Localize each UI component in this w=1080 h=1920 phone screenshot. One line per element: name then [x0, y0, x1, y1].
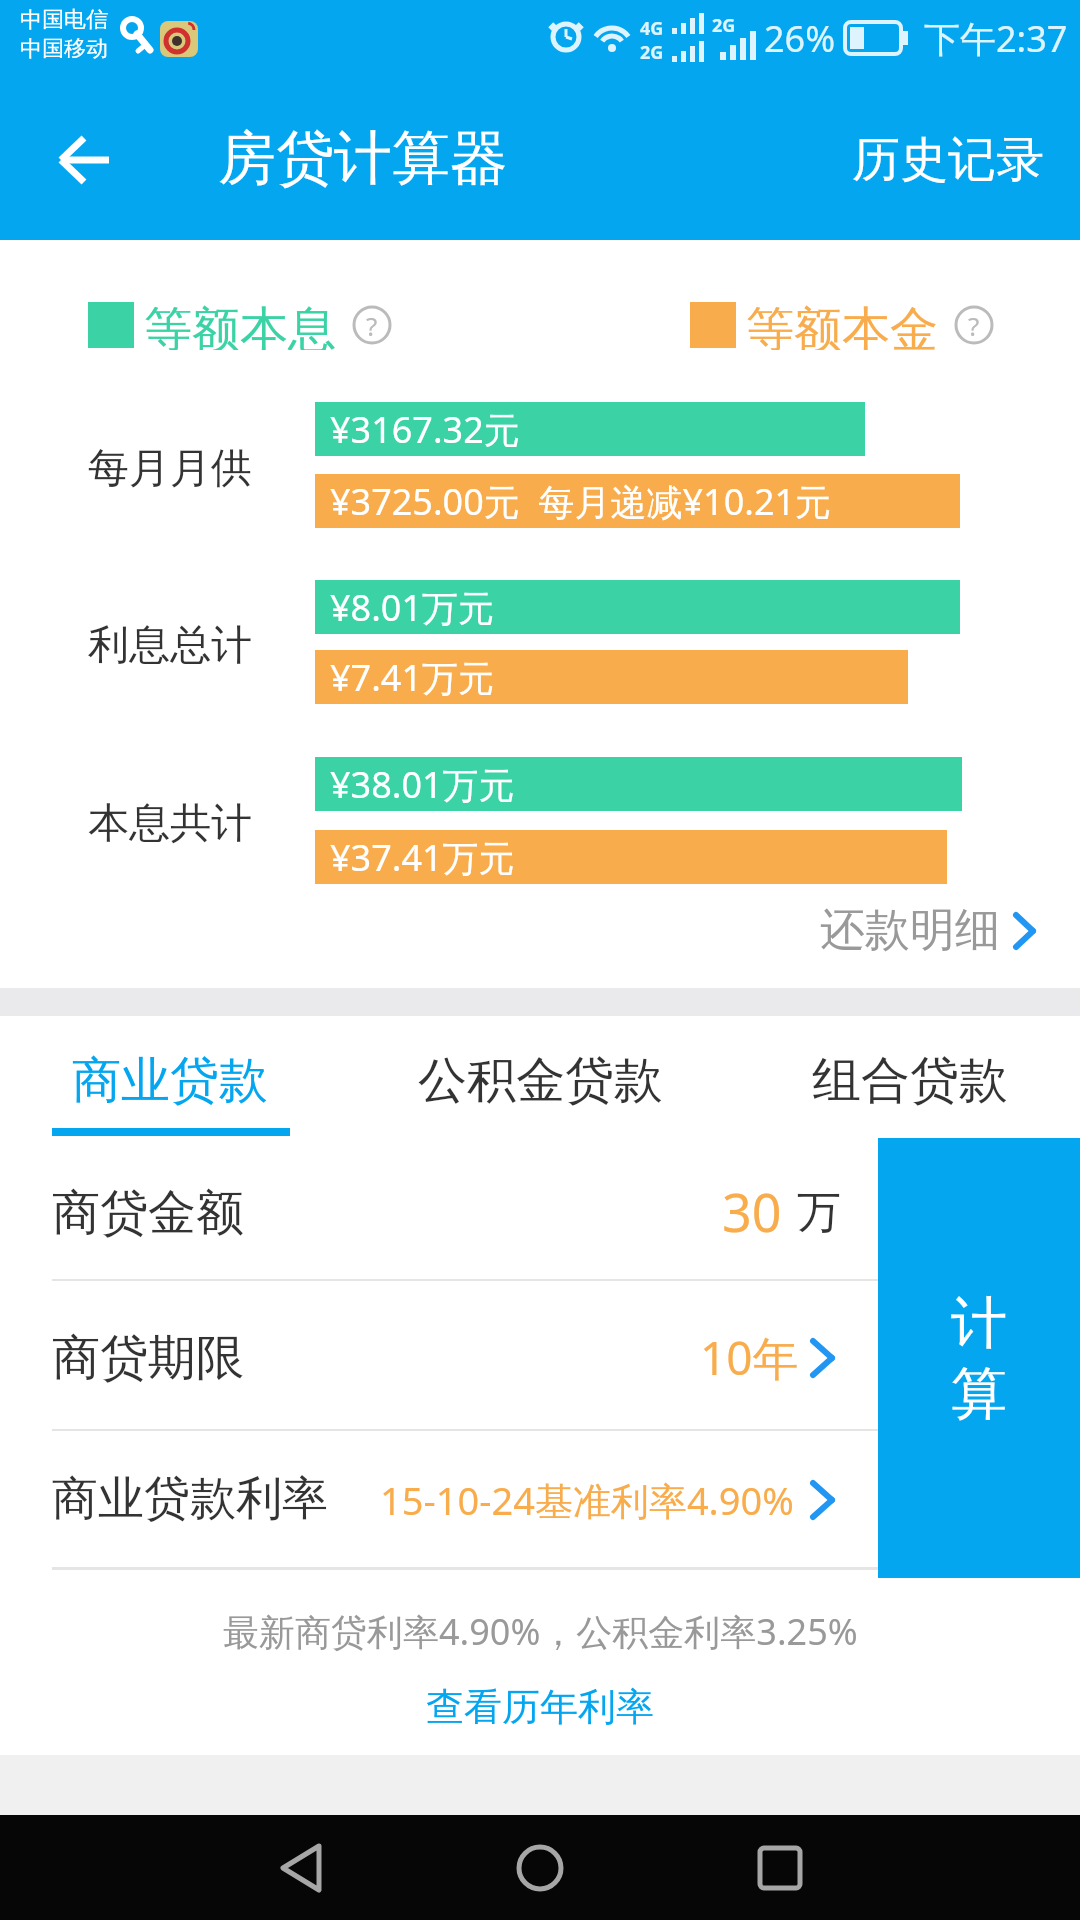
button[interactable]: [700, 1815, 860, 1920]
button[interactable]: [221, 1815, 381, 1920]
staticText: 等额本金: [746, 300, 938, 350]
button[interactable]: 计: [878, 1138, 1080, 1578]
staticText: ¥3725.00元 每月递减¥10.21元: [330, 477, 832, 526]
staticText: ?: [968, 308, 980, 343]
staticText: 算: [951, 1359, 1007, 1430]
staticText: 本息共计: [88, 798, 252, 850]
staticText: 利息总计: [88, 620, 252, 672]
staticText: 10年: [700, 1326, 799, 1389]
staticText: 查看历年利率: [426, 1683, 654, 1731]
staticText: 商业贷款: [72, 1050, 268, 1112]
staticText: ¥8.01万元: [330, 583, 495, 632]
staticText: ¥38.01万元: [330, 760, 515, 809]
button[interactable]: 历史记录: [830, 110, 1070, 210]
staticText: 商贷金额: [52, 1183, 244, 1243]
staticText: 中国电信: [20, 6, 108, 34]
staticText: 最新商贷利率4.90%，公积金利率3.25%: [223, 1607, 858, 1656]
button[interactable]: [460, 1815, 620, 1920]
staticText: 万: [797, 1185, 841, 1240]
staticText: ¥3167.32元: [330, 405, 520, 454]
button[interactable]: 组合贷款: [790, 1036, 1030, 1126]
button[interactable]: 商业贷款: [30, 1036, 310, 1126]
button[interactable]: 公积金贷款: [400, 1036, 680, 1126]
staticText: 4G: [640, 16, 664, 41]
button[interactable]: 等额本息: [88, 300, 392, 350]
button[interactable]: 商贷金额: [0, 1138, 878, 1280]
staticText: 下午2:37: [924, 14, 1068, 63]
button[interactable]: [30, 105, 140, 215]
staticText: 15-10-24基准利率4.90%: [380, 1474, 794, 1526]
staticText: 2G: [712, 13, 736, 38]
staticText: ?: [366, 308, 378, 343]
staticText: 商贷期限: [52, 1328, 244, 1388]
button[interactable]: 还款明细: [800, 900, 1060, 960]
button[interactable]: 查看历年利率: [402, 1676, 678, 1738]
staticText: 组合贷款: [812, 1050, 1008, 1112]
staticText: 2G: [640, 40, 664, 65]
staticText: 30: [722, 1176, 782, 1247]
staticText: 还款明细: [820, 902, 1000, 959]
button[interactable]: 商贷期限: [0, 1281, 878, 1429]
staticText: 26%: [764, 14, 836, 63]
staticText: ¥37.41万元: [330, 833, 515, 882]
staticText: 计: [951, 1288, 1007, 1359]
staticText: 历史记录: [852, 130, 1044, 190]
button[interactable]: 商业贷款利率: [0, 1431, 878, 1568]
staticText: 每月月供: [88, 443, 252, 495]
staticText: 公积金贷款: [418, 1050, 663, 1112]
staticText: 等额本息: [144, 300, 336, 350]
staticText: 房贷计算器: [218, 122, 508, 195]
button[interactable]: 等额本金: [690, 300, 994, 350]
staticText: ¥7.41万元: [330, 653, 495, 702]
staticText: 中国移动: [20, 35, 108, 63]
staticText: 商业贷款利率: [52, 1470, 328, 1528]
